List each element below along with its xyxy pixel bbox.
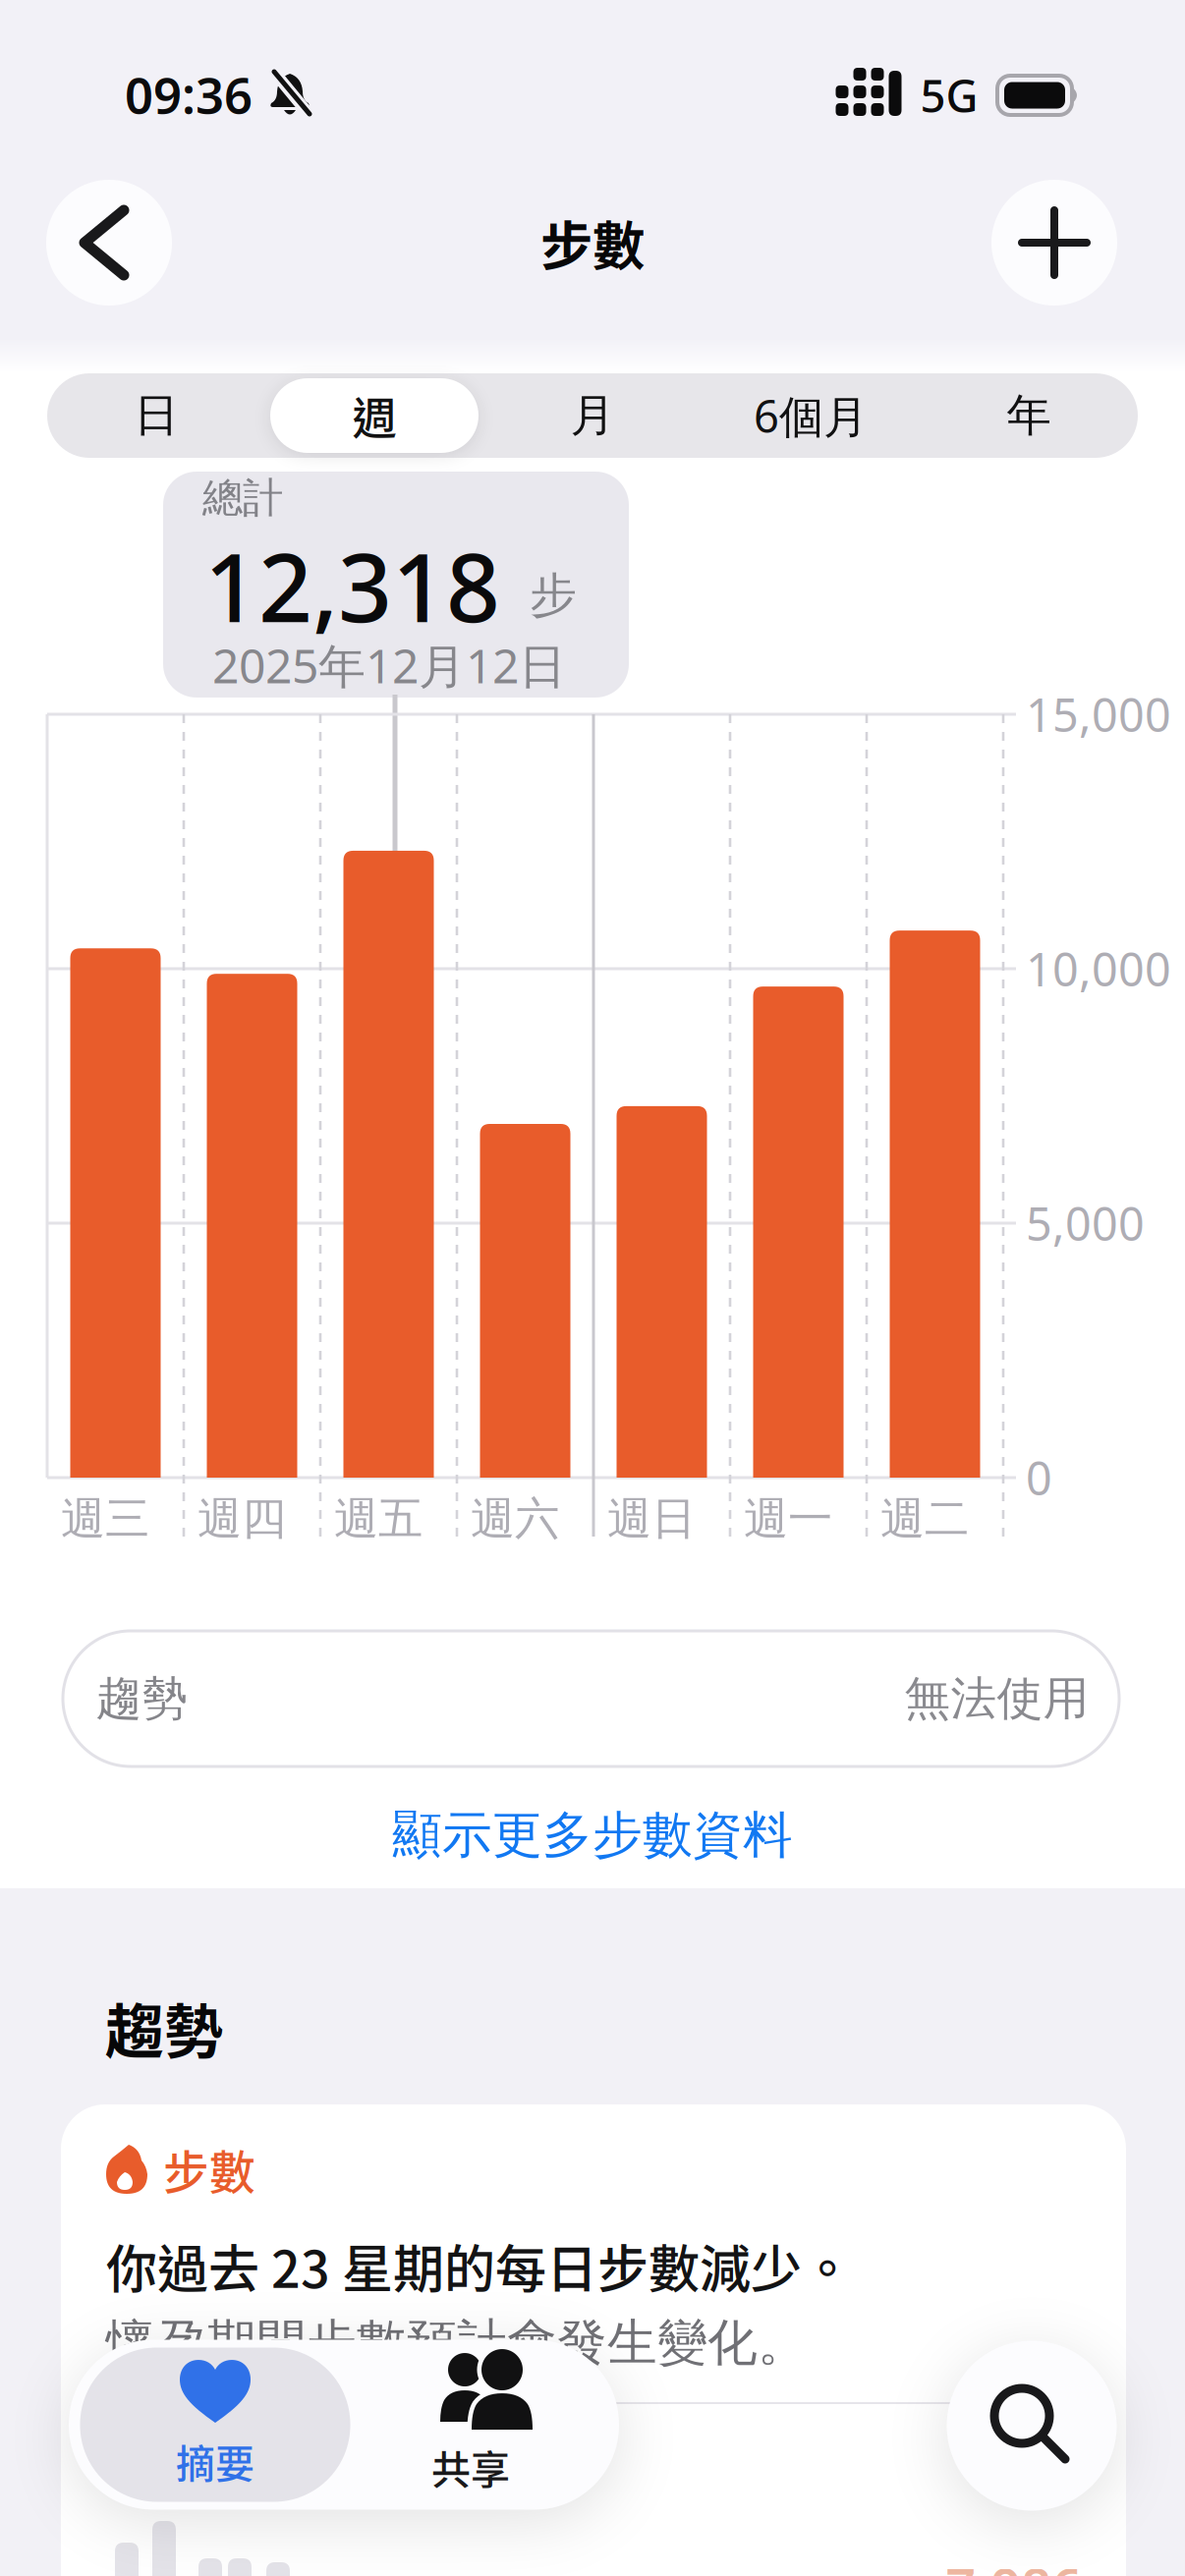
staticText: 0 <box>1026 1447 1052 1508</box>
staticText: 步數 <box>163 2136 255 2202</box>
staticText: 週三 <box>61 1492 149 1546</box>
staticText: 09:36 <box>125 61 253 127</box>
button[interactable]: 週 <box>266 373 482 458</box>
button[interactable]: 趨勢 <box>63 1631 1120 1766</box>
staticText: 你過去 23 星期的每日步數減少。 <box>106 2229 853 2303</box>
button[interactable]: 摘要 <box>80 2348 350 2502</box>
staticText: 10,000 <box>1026 938 1171 999</box>
staticText: 總計 <box>202 473 283 523</box>
staticText: 週二 <box>880 1492 969 1546</box>
staticText: 趨勢 <box>96 1670 188 1727</box>
staticText: 6個月 <box>754 386 868 445</box>
button[interactable]: 6個月 <box>703 373 919 458</box>
staticText: 摘要 <box>176 2433 254 2489</box>
staticText: 2025年12月12日 <box>212 634 566 696</box>
button[interactable]: 月 <box>484 373 701 458</box>
staticText: 懷孕期間步數預計會發生變化。 <box>106 2313 808 2374</box>
staticText: 週五 <box>334 1492 423 1546</box>
staticText: 5,000 <box>1026 1193 1145 1254</box>
button[interactable]: 顯示更多步數資料 <box>298 1791 887 1879</box>
button[interactable]: 搜尋 <box>947 2341 1117 2511</box>
staticText: 週日 <box>607 1492 696 1546</box>
staticText: 週 <box>352 383 396 448</box>
staticText: 年 <box>1007 388 1051 443</box>
staticText: 顯示更多步數資料 <box>392 1805 793 1866</box>
staticText: 週一 <box>744 1492 832 1546</box>
button[interactable]: 返回 <box>46 180 172 306</box>
button[interactable]: 日 <box>48 373 264 458</box>
staticText: 週六 <box>471 1492 559 1546</box>
button[interactable]: 加入資料 <box>991 180 1117 306</box>
staticText: 無法使用 <box>904 1670 1089 1727</box>
staticText: 共享 <box>431 2438 510 2495</box>
staticText: 步 <box>530 566 577 624</box>
button[interactable]: 年 <box>921 373 1137 458</box>
button[interactable]: 步數 <box>61 2104 1126 2576</box>
staticText: 日 <box>134 388 178 443</box>
staticText: 5G <box>920 66 978 125</box>
staticText: 週四 <box>197 1492 286 1546</box>
staticText: 15,000 <box>1026 684 1171 745</box>
staticText: 月 <box>570 388 615 443</box>
staticText: 7,986 <box>946 2552 1082 2576</box>
staticText: 步數 <box>540 205 645 281</box>
staticText: 12,318 <box>204 523 500 648</box>
button[interactable]: 共享 <box>353 2348 589 2502</box>
staticText: 趨勢 <box>105 1985 223 2071</box>
